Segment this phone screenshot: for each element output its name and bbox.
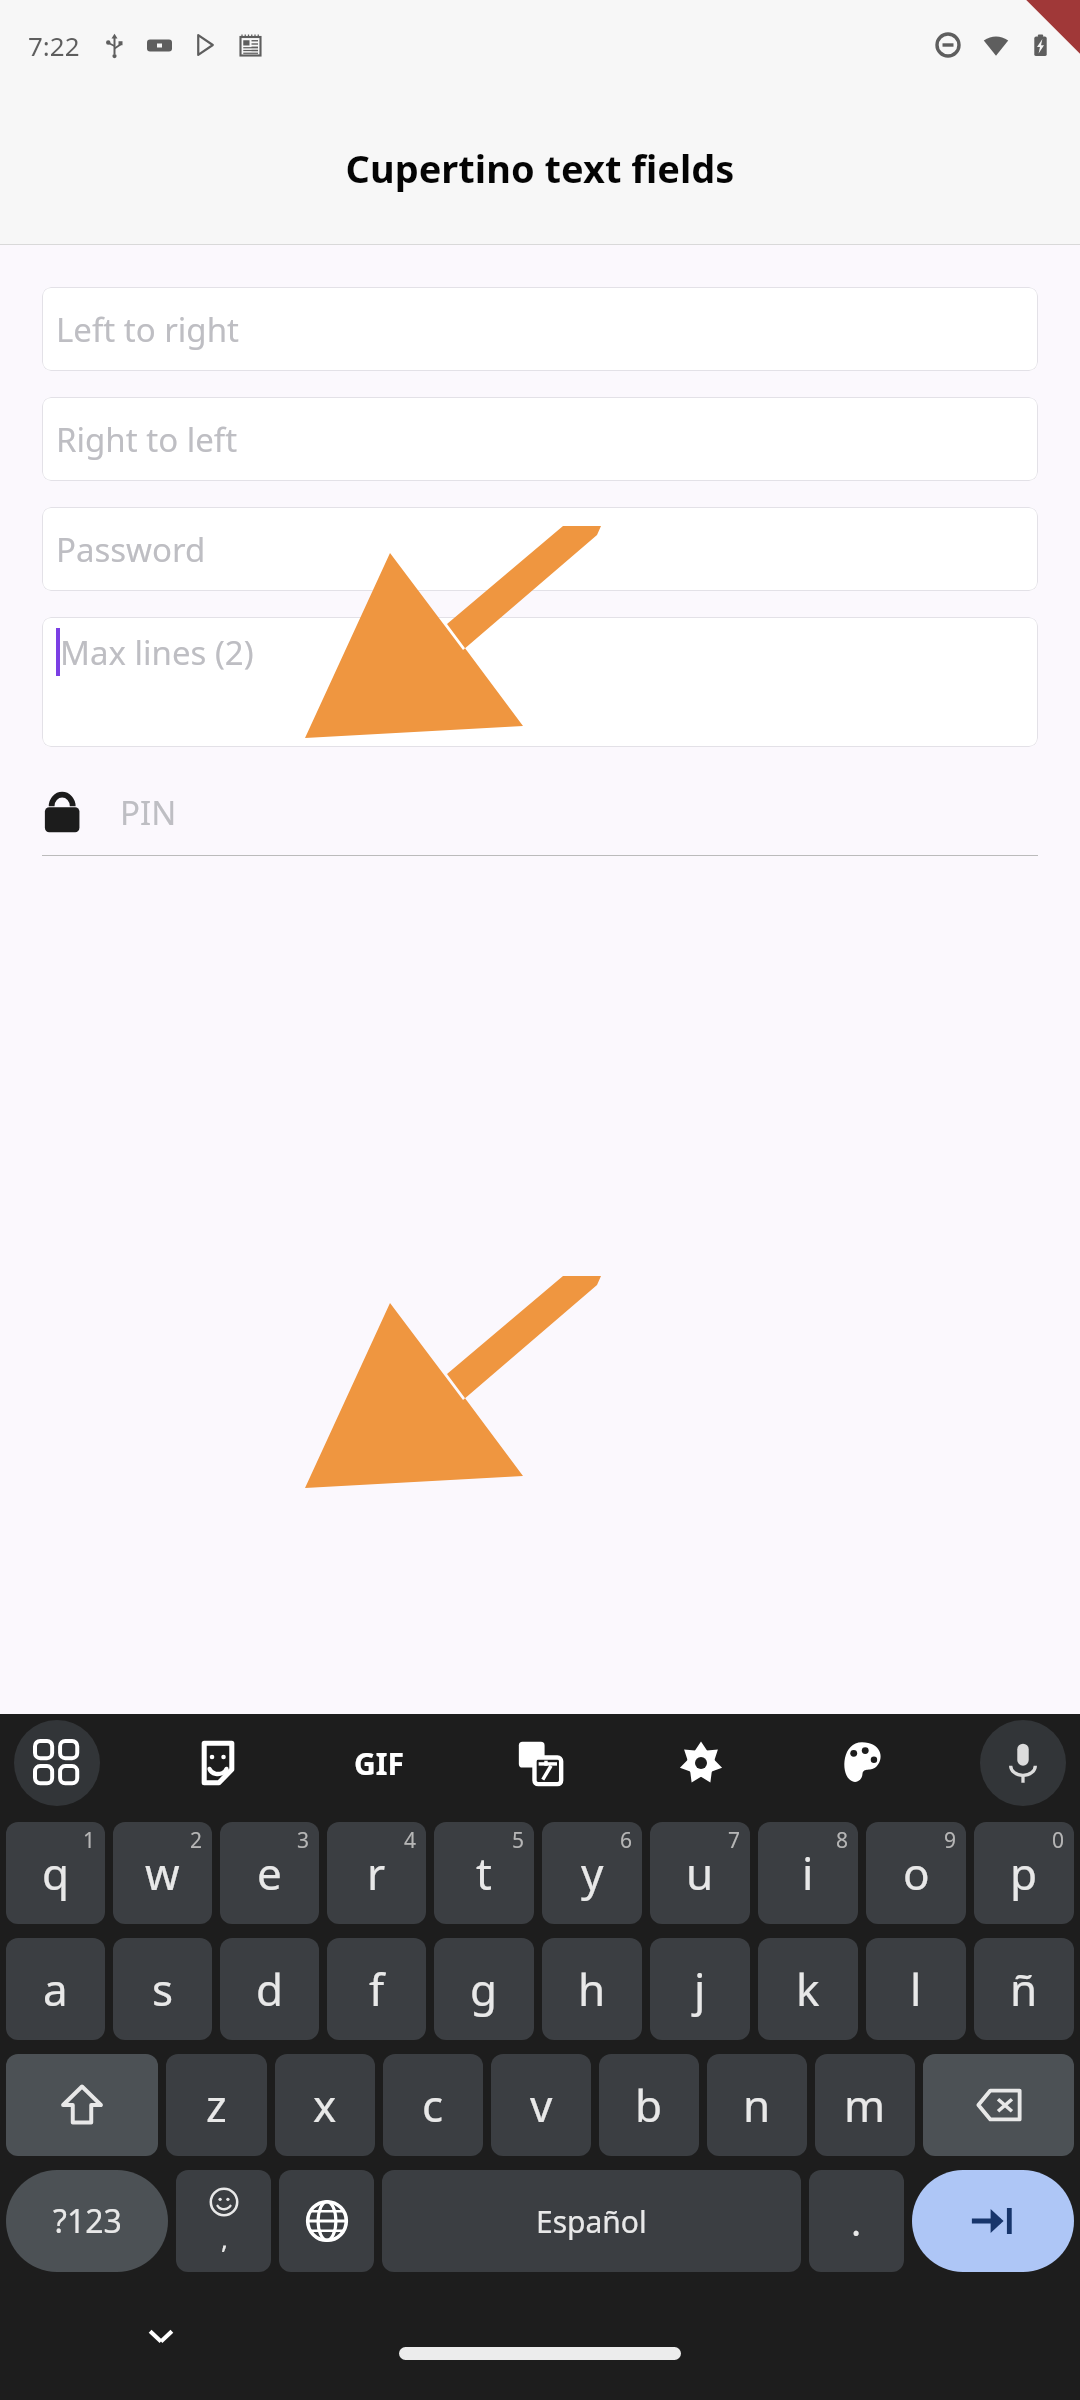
button[interactable]: Change language: [279, 2170, 374, 2272]
button[interactable]: Left to right: [42, 287, 1038, 371]
button[interactable]: Shift: [6, 2054, 158, 2156]
button[interactable]: w: [113, 1822, 212, 1924]
button[interactable]: a: [6, 1938, 105, 2040]
button[interactable]: Emoji: [176, 2170, 271, 2272]
button[interactable]: Backspace: [923, 2054, 1074, 2156]
staticText: m: [844, 2075, 886, 2135]
staticText: n: [743, 2075, 771, 2135]
button[interactable]: Password: [42, 507, 1038, 591]
staticText: Right to left: [56, 417, 238, 462]
staticText: 5: [512, 1826, 525, 1855]
button[interactable]: Max lines (2): [42, 617, 1038, 747]
staticText: e: [257, 1843, 282, 1903]
staticText: Español: [536, 2201, 647, 2242]
button[interactable]: Hide keyboard: [130, 2305, 192, 2367]
button[interactable]: Stickers: [175, 1720, 261, 1806]
button[interactable]: v: [491, 2054, 591, 2156]
staticText: c: [422, 2075, 444, 2135]
button[interactable]: o: [866, 1822, 966, 1924]
button[interactable]: d: [220, 1938, 319, 2040]
staticText: 7:22: [28, 28, 80, 63]
staticText: w: [145, 1843, 180, 1903]
staticText: j: [694, 1959, 706, 2019]
staticText: 8: [836, 1826, 849, 1855]
button[interactable]: Apps: [14, 1720, 100, 1806]
button[interactable]: x: [275, 2054, 375, 2156]
staticText: ?123: [53, 2199, 122, 2243]
button[interactable]: f: [327, 1938, 426, 2040]
button[interactable]: k: [758, 1938, 858, 2040]
staticText: ñ: [1010, 1959, 1038, 2019]
staticText: f: [369, 1959, 385, 2019]
staticText: l: [910, 1959, 922, 2019]
staticText: 3: [297, 1826, 310, 1855]
button[interactable]: q: [6, 1822, 105, 1924]
button[interactable]: j: [650, 1938, 750, 2040]
staticText: GIF: [354, 1743, 404, 1784]
staticText: PIN: [120, 790, 177, 835]
staticText: d: [256, 1959, 284, 2019]
button[interactable]: c: [383, 2054, 483, 2156]
button[interactable]: .: [809, 2170, 904, 2272]
staticText: .: [851, 2195, 862, 2247]
staticText: p: [1010, 1843, 1038, 1903]
staticText: 0: [1052, 1826, 1065, 1855]
button[interactable]: t: [434, 1822, 534, 1924]
button[interactable]: Voice input: [980, 1720, 1066, 1806]
staticText: h: [578, 1959, 606, 2019]
button[interactable]: p: [974, 1822, 1074, 1924]
button[interactable]: Translate: [497, 1720, 583, 1806]
staticText: 6: [620, 1826, 633, 1855]
staticText: g: [470, 1959, 498, 2019]
staticText: r: [367, 1843, 386, 1903]
button[interactable]: i: [758, 1822, 858, 1924]
button[interactable]: e: [220, 1822, 319, 1924]
staticText: k: [796, 1959, 820, 2019]
staticText: Cupertino text fields: [0, 142, 1080, 194]
staticText: v: [530, 2075, 553, 2135]
button[interactable]: r: [327, 1822, 426, 1924]
button[interactable]: Next: [912, 2170, 1074, 2272]
staticText: y: [581, 1843, 604, 1903]
staticText: u: [686, 1843, 714, 1903]
staticText: i: [802, 1843, 814, 1903]
staticText: z: [206, 2075, 227, 2135]
button[interactable]: n: [707, 2054, 807, 2156]
staticText: 4: [404, 1826, 417, 1855]
button[interactable]: GIF: [336, 1720, 422, 1806]
staticText: 1: [83, 1826, 96, 1855]
staticText: b: [635, 2075, 663, 2135]
staticText: 9: [944, 1826, 957, 1855]
staticText: Password: [56, 527, 206, 572]
button[interactable]: z: [166, 2054, 267, 2156]
button[interactable]: y: [542, 1822, 642, 1924]
button[interactable]: b: [599, 2054, 699, 2156]
button[interactable]: ?123: [6, 2170, 168, 2272]
button[interactable]: Theme: [819, 1720, 905, 1806]
button[interactable]: u: [650, 1822, 750, 1924]
button[interactable]: Español: [382, 2170, 801, 2272]
button[interactable]: Right to left: [42, 397, 1038, 481]
staticText: s: [152, 1959, 174, 2019]
staticText: x: [313, 2075, 337, 2135]
staticText: q: [42, 1843, 70, 1903]
staticText: Left to right: [56, 307, 239, 352]
staticText: ,: [221, 2221, 228, 2256]
staticText: 7: [728, 1826, 741, 1855]
button[interactable]: m: [815, 2054, 915, 2156]
button[interactable]: PIN: [42, 769, 1038, 856]
button[interactable]: h: [542, 1938, 642, 2040]
button[interactable]: ñ: [974, 1938, 1074, 2040]
staticText: t: [476, 1843, 492, 1903]
button[interactable]: g: [434, 1938, 534, 2040]
staticText: o: [903, 1843, 930, 1903]
staticText: Max lines (2): [60, 630, 254, 675]
button[interactable]: l: [866, 1938, 966, 2040]
button[interactable]: s: [113, 1938, 212, 2040]
staticText: 2: [190, 1826, 203, 1855]
staticText: a: [43, 1959, 68, 2019]
button[interactable]: Settings: [658, 1720, 744, 1806]
